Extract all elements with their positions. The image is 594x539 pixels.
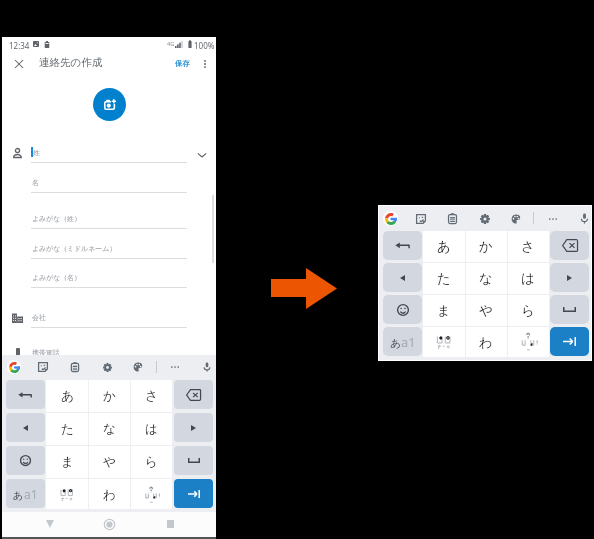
button[interactable]: 保存 — [172, 56, 193, 71]
staticText: た — [437, 270, 451, 287]
other: Backspace — [174, 380, 213, 409]
staticText: わ — [103, 487, 116, 503]
button[interactable]: Back — [40, 514, 60, 534]
button[interactable] — [130, 479, 172, 512]
other: Emoji — [6, 446, 45, 475]
staticText: よみがな（ミドルネーム） — [32, 244, 117, 253]
staticText: 100% — [194, 40, 215, 51]
button[interactable]: た — [423, 263, 465, 295]
button[interactable]: あ — [6, 479, 45, 508]
button[interactable]: Emoji — [6, 446, 45, 475]
button[interactable]: Home — [99, 514, 119, 534]
button[interactable]: Themes — [509, 212, 522, 225]
button[interactable]: Google — [383, 211, 398, 226]
staticText: わ — [479, 334, 493, 351]
button[interactable]: か — [465, 231, 507, 263]
button[interactable]: よみがな（ミドルネーム） — [2, 238, 216, 259]
staticText: は — [145, 421, 158, 437]
button[interactable]: Undo — [6, 380, 45, 409]
button[interactable]: Space — [550, 295, 589, 324]
button[interactable]: More options — [196, 55, 213, 72]
button[interactable]: あ — [423, 231, 465, 263]
button[interactable]: Stickers — [37, 361, 49, 373]
button[interactable]: よみがな（名） — [2, 267, 216, 288]
staticText: 名 — [32, 178, 39, 187]
staticText: 4G — [167, 40, 175, 48]
staticText: 12:34 — [9, 40, 30, 51]
button[interactable]: More — [546, 212, 559, 225]
button[interactable]: Emoji — [383, 295, 422, 324]
staticText: よみがな（姓） — [32, 214, 81, 223]
button[interactable]: わ — [465, 327, 507, 359]
button[interactable]: Move left — [383, 263, 422, 292]
button[interactable]: ま — [46, 446, 88, 479]
staticText: ら — [145, 454, 158, 470]
button[interactable]: あ — [46, 380, 88, 413]
button[interactable]: 携帯電話 — [2, 342, 216, 363]
button[interactable]: Voice input — [578, 212, 591, 225]
button[interactable]: あ — [383, 327, 422, 356]
button[interactable]: は — [130, 413, 172, 446]
button[interactable] — [507, 327, 549, 359]
button[interactable]: Move right — [550, 263, 589, 292]
other: Enter — [174, 479, 213, 508]
button[interactable]: Move left — [6, 413, 45, 442]
button[interactable]: Recents — [160, 514, 180, 534]
staticText: な — [479, 270, 493, 287]
button[interactable] — [423, 327, 465, 359]
button[interactable]: 会社 — [2, 307, 216, 328]
button[interactable]: Move right — [174, 413, 213, 442]
staticText: は — [521, 270, 535, 287]
other: Move right — [174, 413, 213, 442]
button[interactable]: な — [88, 413, 130, 446]
button[interactable]: Settings — [478, 212, 491, 225]
button[interactable]: さ — [130, 380, 172, 413]
button[interactable]: Enter — [174, 479, 213, 508]
button[interactable]: Enter — [550, 327, 589, 356]
button[interactable]: Themes — [132, 361, 144, 373]
button[interactable]: Close — [10, 55, 27, 72]
button[interactable] — [46, 479, 88, 512]
staticText: 携帯電話 — [32, 348, 60, 357]
staticText: よみがな（名） — [32, 273, 81, 282]
button[interactable]: Google — [7, 360, 21, 374]
button[interactable]: は — [507, 263, 549, 295]
button[interactable]: Stickers — [414, 212, 427, 225]
button[interactable]: ま — [423, 295, 465, 327]
button[interactable]: Voice input — [201, 361, 213, 373]
staticText: 会社 — [32, 313, 46, 322]
other: Backspace — [550, 231, 589, 260]
staticText: 連絡先の作成 — [39, 56, 103, 69]
button[interactable]: 名 — [2, 172, 216, 193]
staticText: な — [103, 421, 116, 437]
button[interactable]: Clipboard — [69, 361, 81, 373]
other: Move left — [6, 413, 45, 442]
staticText: さ — [521, 238, 535, 255]
button[interactable]: More — [169, 361, 181, 373]
button[interactable]: さ — [507, 231, 549, 263]
staticText: や — [479, 302, 493, 319]
other: Enter — [550, 327, 589, 356]
button[interactable]: や — [465, 295, 507, 327]
staticText: か — [103, 388, 116, 404]
button[interactable]: か — [88, 380, 130, 413]
staticText: や — [103, 454, 116, 470]
button[interactable]: Clipboard — [446, 212, 459, 225]
staticText: ま — [437, 302, 451, 319]
button[interactable]: Undo — [383, 231, 422, 260]
button[interactable]: Settings — [101, 361, 113, 373]
staticText: た — [61, 421, 74, 437]
button[interactable]: や — [88, 446, 130, 479]
button[interactable]: わ — [88, 479, 130, 512]
button[interactable]: Backspace — [174, 380, 213, 409]
button[interactable]: Space — [174, 446, 213, 475]
button[interactable]: よみがな（姓） — [2, 208, 216, 229]
button[interactable]: た — [46, 413, 88, 446]
button[interactable]: ら — [507, 295, 549, 327]
button[interactable]: 姓 — [2, 142, 216, 163]
button[interactable]: な — [465, 263, 507, 295]
button[interactable]: ら — [130, 446, 172, 479]
other: Undo — [383, 231, 422, 260]
button[interactable]: Backspace — [550, 231, 589, 260]
button[interactable]: Add photo — [93, 88, 126, 121]
